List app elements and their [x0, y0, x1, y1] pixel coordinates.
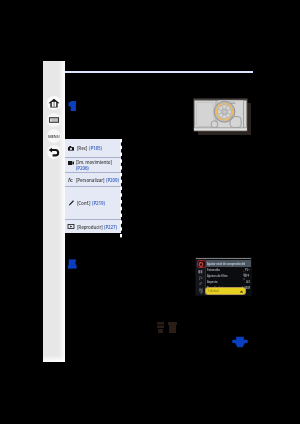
button[interactable]: [Reproducir] [65, 220, 121, 233]
staticText: – [243, 269, 245, 273]
staticText: Ajustar nivel de compresión del [207, 262, 246, 266]
staticText: ▫ [243, 277, 246, 280]
other: Marker [232, 333, 248, 348]
button[interactable]: Home [47, 96, 61, 110]
button[interactable]: [Rec] [65, 139, 121, 157]
staticText: PL~ [245, 268, 250, 272]
button[interactable]: Menu [47, 129, 61, 143]
staticText: ▮▮ [198, 269, 203, 274]
staticText: L 14M [242, 286, 250, 290]
staticText: [Rec] [77, 145, 88, 151]
staticText: Fotoestilo [207, 268, 220, 272]
button[interactable]: [Im. movimiento] [65, 158, 121, 172]
staticText: Aspecto [207, 280, 218, 284]
staticText: [Conf.] [77, 200, 91, 206]
staticText: (P219) [91, 200, 105, 206]
staticText: ✐ [200, 290, 204, 295]
staticText: Tamaño de imagen [207, 286, 233, 290]
staticText: [Reproducir] [77, 224, 103, 230]
staticText: 4:3 [246, 280, 250, 284]
button[interactable]: [Conf.] [65, 187, 121, 219]
staticText: (P185) [88, 145, 102, 151]
button[interactable]: 𝑓c [65, 173, 121, 186]
staticText: 𝑓c [68, 176, 73, 184]
staticText: (P209) [105, 177, 119, 183]
staticText: Calidad [208, 289, 219, 293]
staticText: [Im. movimiento] [76, 159, 112, 165]
staticText: MENU [48, 134, 60, 139]
staticText: ▤ [199, 287, 203, 292]
button[interactable]: Back [47, 145, 61, 159]
staticText: ✐ [199, 281, 203, 286]
staticText: AL [243, 273, 247, 277]
staticText: ƒc [199, 275, 203, 280]
staticText: (P227) [103, 224, 117, 230]
button[interactable]: Display [47, 113, 61, 127]
staticText: [Personalizar] [76, 177, 105, 183]
staticText: (P206) [76, 165, 89, 171]
staticText: Ajustes de filtro [207, 274, 228, 278]
staticText: OFF [244, 274, 250, 278]
